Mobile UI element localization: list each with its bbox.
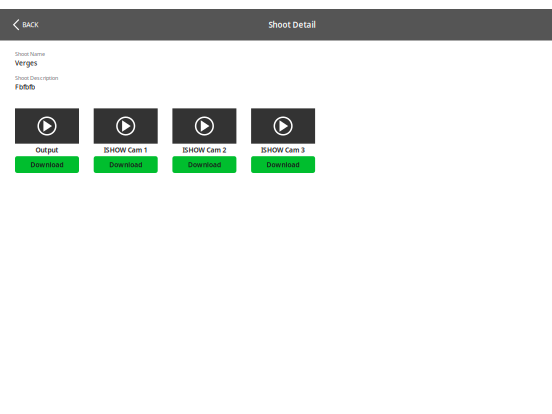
staticText: Shoot Name [15, 50, 45, 58]
staticText: Verges [15, 59, 37, 67]
button[interactable]: Download [15, 156, 79, 173]
staticText: ISHOW Cam 2 [182, 145, 226, 154]
staticText: ISHOW Cam 1 [104, 145, 148, 154]
staticText: Fbfbfb [15, 82, 35, 91]
staticText: Shoot Detail [268, 19, 315, 30]
button[interactable]: Play Output [15, 108, 79, 144]
button[interactable]: Download [172, 156, 236, 173]
button[interactable]: Play ISHOW Cam 2 [172, 108, 236, 144]
button[interactable]: Play ISHOW Cam 3 [251, 108, 315, 144]
staticText: Output [35, 145, 58, 154]
staticText: Download [109, 160, 142, 169]
button[interactable]: Download [94, 156, 158, 173]
button[interactable]: Play ISHOW Cam 1 [94, 108, 158, 144]
staticText: Download [30, 160, 63, 169]
staticText: Shoot Description [15, 74, 58, 81]
staticText: BACK [22, 20, 38, 29]
button[interactable]: BACK [0, 9, 44, 40]
staticText: ISHOW Cam 3 [261, 145, 305, 154]
staticText: Download [267, 160, 300, 169]
button[interactable]: Download [251, 156, 315, 173]
staticText: Download [188, 160, 221, 169]
